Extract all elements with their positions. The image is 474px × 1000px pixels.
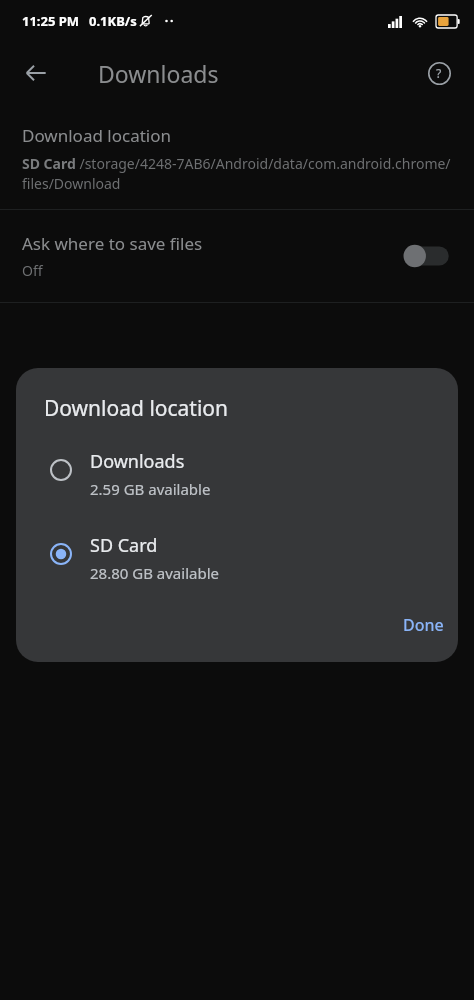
staticText: SD Card /storage/4248-7AB6/Android/data/… bbox=[22, 154, 454, 193]
staticText: 28.80 GB available bbox=[90, 563, 219, 583]
button[interactable]: Ask where to save files toggle bbox=[398, 239, 452, 273]
staticText: 2.59 GB available bbox=[90, 479, 211, 499]
button[interactable]: Done bbox=[389, 606, 458, 644]
staticText: Off bbox=[22, 261, 43, 280]
button[interactable]: Back bbox=[12, 49, 60, 97]
button[interactable]: Ask where to save files bbox=[0, 210, 474, 302]
staticText: 11:25 PM bbox=[22, 12, 80, 30]
staticText: Downloads bbox=[90, 449, 185, 474]
staticText: 0.1KB/s bbox=[89, 12, 137, 30]
staticText: Done bbox=[403, 614, 444, 636]
staticText: Ask where to save files bbox=[22, 232, 203, 255]
staticText: Downloads bbox=[98, 58, 219, 89]
staticText: Download location bbox=[44, 394, 229, 423]
staticText: Download location bbox=[22, 124, 171, 147]
button[interactable]: Help bbox=[417, 51, 461, 95]
button[interactable]: SD Card bbox=[16, 529, 458, 587]
staticText: ? bbox=[436, 65, 442, 81]
button[interactable]: Downloads bbox=[16, 445, 458, 503]
staticText: SD Card bbox=[90, 533, 158, 558]
button[interactable]: Download location bbox=[0, 122, 474, 195]
